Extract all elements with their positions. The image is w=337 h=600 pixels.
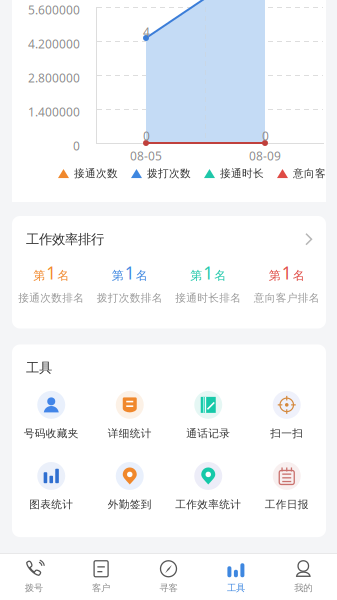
- staticText: 1: [282, 261, 292, 284]
- staticText: 工具: [26, 359, 52, 376]
- staticText: 工作效率排行: [26, 231, 104, 247]
- staticText: 5.600000: [28, 2, 80, 18]
- staticText: 第: [190, 268, 202, 283]
- staticText: 扫一扫: [270, 427, 303, 440]
- button[interactable]: 客户: [67, 551, 135, 600]
- staticText: 通话记录: [186, 427, 230, 440]
- button[interactable]: 工作效率排行: [12, 216, 326, 328]
- staticText: 接通次数: [74, 167, 118, 180]
- staticText: 接通时长: [220, 167, 264, 180]
- staticText: 意向客户排名: [254, 291, 320, 304]
- staticText: 第: [269, 268, 281, 283]
- staticText: 0: [73, 138, 80, 154]
- staticText: 0: [143, 128, 150, 144]
- staticText: 拨打次数排名: [97, 291, 163, 304]
- staticText: 图表统计: [29, 498, 73, 511]
- button[interactable]: 号码收藏夹: [12, 391, 90, 440]
- staticText: 第: [112, 268, 124, 283]
- staticText: 0: [262, 128, 269, 144]
- staticText: 详细统计: [108, 427, 152, 440]
- staticText: 名: [136, 268, 148, 283]
- button[interactable]: 详细统计: [90, 391, 169, 440]
- staticText: 名: [293, 268, 305, 283]
- button[interactable]: 工作效率统计: [169, 462, 247, 511]
- staticText: 第: [33, 268, 45, 283]
- staticText: 名: [57, 268, 69, 283]
- staticText: 4: [143, 24, 150, 40]
- staticText: 名: [214, 268, 226, 283]
- staticText: 我的: [294, 582, 312, 594]
- staticText: 1: [46, 261, 56, 284]
- staticText: 寻客: [159, 582, 177, 594]
- staticText: 2.800000: [28, 70, 80, 86]
- button[interactable]: 外勤签到: [90, 462, 169, 511]
- staticText: 08-09: [249, 148, 281, 164]
- staticText: 08-05: [130, 148, 162, 164]
- staticText: 工具: [227, 582, 245, 594]
- button[interactable]: 工作日报: [247, 462, 326, 511]
- staticText: 意向客户: [293, 167, 337, 180]
- staticText: 拨号: [25, 582, 43, 594]
- staticText: 1: [125, 261, 135, 284]
- staticText: 1: [203, 261, 213, 284]
- staticText: 接通次数排名: [18, 291, 84, 304]
- button[interactable]: 我的: [270, 551, 337, 600]
- button[interactable]: 扫一扫: [247, 391, 326, 440]
- staticText: 接通时长排名: [175, 291, 241, 304]
- staticText: 外勤签到: [108, 498, 152, 511]
- button[interactable]: 寻客: [135, 551, 202, 600]
- staticText: 客户: [92, 582, 110, 594]
- staticText: 号码收藏夹: [24, 427, 79, 440]
- staticText: 工作日报: [265, 498, 309, 511]
- button[interactable]: 通话记录: [169, 391, 247, 440]
- button[interactable]: 工具: [202, 551, 270, 600]
- staticText: 工作效率统计: [175, 498, 241, 511]
- staticText: 拨打次数: [147, 167, 191, 180]
- button[interactable]: 拨号: [0, 551, 67, 600]
- button[interactable]: 图表统计: [12, 462, 90, 511]
- staticText: 1.400000: [28, 104, 80, 120]
- staticText: 4.200000: [28, 36, 80, 52]
